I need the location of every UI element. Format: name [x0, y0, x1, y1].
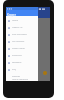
staticText: Weekly Ad — [12, 26, 23, 29]
button[interactable]: Help & feedback — [6, 78, 38, 81]
button[interactable]: Settings — [6, 75, 38, 78]
staticText: Feedback — [12, 61, 22, 64]
staticText: Pharmacy — [12, 54, 22, 57]
button[interactable]: FAQ — [6, 66, 38, 73]
button[interactable]: Weekly Ad — [6, 24, 38, 31]
button[interactable]: Add — [43, 71, 47, 75]
button[interactable]: Order Ahead — [6, 45, 38, 52]
staticText: Past Purchases — [12, 33, 27, 36]
staticText: Kroger — [7, 13, 16, 17]
button[interactable]: Pharmacy — [6, 52, 38, 59]
button[interactable]: Home — [6, 17, 38, 24]
staticText: My Coupons — [12, 40, 25, 43]
button[interactable]: My Coupons — [6, 38, 38, 45]
staticText: Order Ahead — [12, 47, 25, 50]
staticText: Settings — [12, 75, 20, 78]
button[interactable]: Past Purchases — [6, 31, 38, 38]
staticText: Home — [12, 19, 18, 22]
staticText: FAQ — [12, 68, 16, 71]
staticText: Help & feedback — [12, 78, 29, 81]
button[interactable]: Feedback — [6, 59, 38, 66]
